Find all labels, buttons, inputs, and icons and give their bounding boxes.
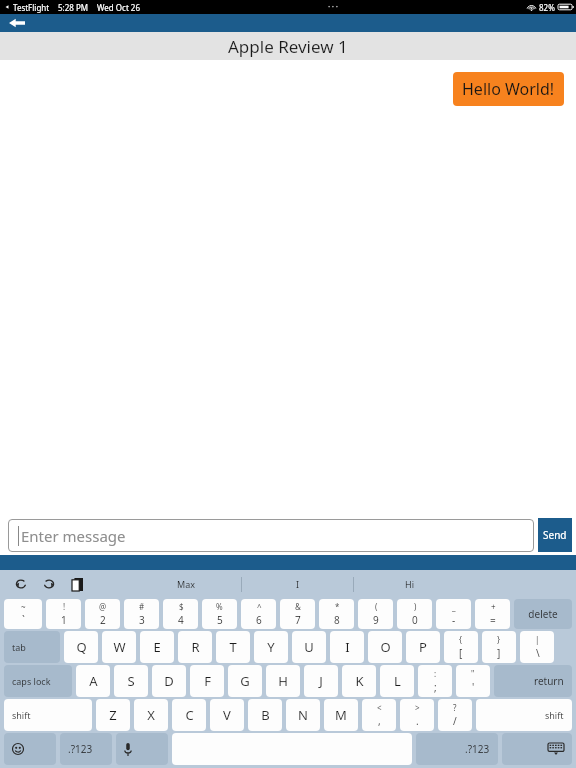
staticText: % (216, 601, 223, 612)
staticText: > (415, 702, 420, 713)
button[interactable]: $ (163, 599, 198, 629)
staticText: 7 (295, 613, 301, 627)
button[interactable]: @ (85, 599, 120, 629)
button[interactable]: I (330, 631, 364, 663)
button[interactable]: Hi (354, 570, 465, 598)
button[interactable]: delete (514, 599, 572, 629)
button[interactable]: B (248, 699, 282, 731)
staticText: ^ (257, 601, 262, 612)
staticText: { (459, 634, 463, 645)
button[interactable]: Z (96, 699, 130, 731)
button[interactable]: | (520, 631, 554, 663)
staticText: K (355, 672, 364, 690)
staticText: Apple Review 1 (228, 35, 348, 58)
staticText: B (261, 706, 270, 724)
staticText: tab (12, 641, 26, 653)
button[interactable]: I (242, 570, 353, 598)
staticText: O (380, 638, 391, 656)
staticText: E (153, 638, 161, 656)
button[interactable]: % (202, 599, 237, 629)
button[interactable]: .?123 (60, 733, 112, 765)
button[interactable]: Max (130, 570, 241, 598)
button[interactable]: Redo (40, 575, 58, 593)
button[interactable]: J (304, 665, 338, 697)
button[interactable]: Hello World! (453, 72, 564, 106)
button[interactable]: S (114, 665, 148, 697)
button[interactable]: Hide keyboard (502, 733, 572, 765)
button[interactable]: : (418, 665, 452, 697)
button[interactable]: > (400, 699, 434, 731)
button[interactable]: N (286, 699, 320, 731)
staticText: 5 (217, 613, 223, 627)
button[interactable]: Y (254, 631, 288, 663)
staticText: " (471, 668, 475, 679)
staticText: = (490, 613, 496, 627)
button[interactable]: + (475, 599, 510, 629)
button[interactable]: return (494, 665, 572, 697)
button[interactable]: X (134, 699, 168, 731)
button[interactable]: F (190, 665, 224, 697)
staticText: S (127, 672, 135, 690)
button[interactable]: } (482, 631, 516, 663)
button[interactable]: L (380, 665, 414, 697)
button[interactable]: ? (438, 699, 472, 731)
button[interactable]: P (406, 631, 440, 663)
staticText: 9 (373, 613, 379, 627)
button[interactable]: O (368, 631, 402, 663)
button[interactable]: U (292, 631, 326, 663)
staticText: | (535, 634, 540, 645)
staticText: 0 (412, 613, 418, 627)
staticText: T (229, 638, 237, 656)
button[interactable]: V (210, 699, 244, 731)
button[interactable]: < (362, 699, 396, 731)
button[interactable]: R (178, 631, 212, 663)
button[interactable]: Paste (68, 575, 86, 593)
button[interactable]: Emoji (4, 733, 56, 765)
button[interactable]: # (124, 599, 159, 629)
button[interactable]: { (444, 631, 478, 663)
button[interactable]: ! (46, 599, 81, 629)
button[interactable]: Undo (12, 575, 30, 593)
button[interactable]: G (228, 665, 262, 697)
button[interactable]: M (324, 699, 358, 731)
button[interactable]: Send (538, 518, 572, 552)
button[interactable]: D (152, 665, 186, 697)
button[interactable]: T (216, 631, 250, 663)
staticText: & (295, 601, 301, 612)
button[interactable]: ^ (241, 599, 276, 629)
staticText: shift (545, 709, 564, 721)
button[interactable]: K (342, 665, 376, 697)
staticText: 5:28 PM (58, 2, 89, 13)
staticText: U (304, 638, 314, 656)
staticText: , (378, 714, 381, 728)
button[interactable]: E (140, 631, 174, 663)
staticText: ] (497, 646, 501, 660)
button[interactable]: _ (436, 599, 471, 629)
staticText: TestFlight (13, 2, 50, 13)
button[interactable]: & (280, 599, 315, 629)
button[interactable]: ) (397, 599, 432, 629)
staticText: P (419, 638, 427, 656)
staticText: 2 (100, 613, 106, 627)
button[interactable]: Q (64, 631, 98, 663)
button[interactable]: Back (4, 14, 30, 32)
button[interactable]: W (102, 631, 136, 663)
button[interactable]: * (319, 599, 354, 629)
button[interactable]: .?123 (416, 733, 498, 765)
button[interactable]: H (266, 665, 300, 697)
button[interactable]: A (76, 665, 110, 697)
button[interactable]: Enter message (8, 519, 534, 552)
button[interactable]: ~ (4, 599, 42, 629)
button[interactable]: shift (476, 699, 572, 731)
button[interactable]: C (172, 699, 206, 731)
button[interactable]: caps lock (4, 665, 72, 697)
staticText: Enter message (21, 526, 126, 546)
button[interactable]: shift (4, 699, 92, 731)
staticText: 3 (139, 613, 145, 627)
staticText: F (204, 672, 211, 690)
button[interactable]: " (456, 665, 490, 697)
button[interactable]: ( (358, 599, 393, 629)
button[interactable]: Dictation (116, 733, 168, 765)
button[interactable]: tab (4, 631, 60, 663)
